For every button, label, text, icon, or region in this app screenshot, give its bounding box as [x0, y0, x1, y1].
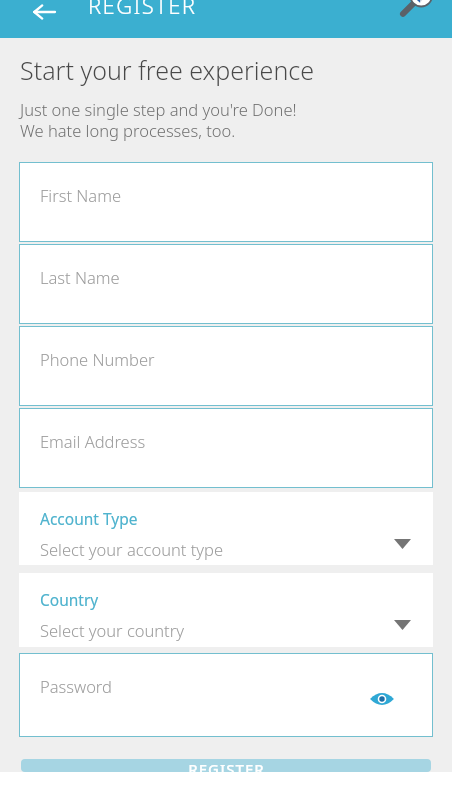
button[interactable]: Phone Number	[19, 326, 433, 406]
button[interactable]: REGISTER	[21, 759, 431, 772]
staticText: Phone Number	[40, 348, 155, 370]
staticText: REGISTER	[188, 759, 265, 772]
button[interactable]: Password	[19, 653, 433, 737]
staticText: Email Address	[40, 430, 146, 452]
button[interactable]: Search	[389, 0, 447, 16]
button[interactable]: Show password	[369, 686, 395, 712]
staticText: First Name	[40, 184, 121, 206]
staticText: Last Name	[40, 266, 120, 288]
staticText: Just one single step and you're Done! We…	[20, 98, 297, 142]
staticText: Select your account type	[40, 538, 224, 560]
staticText: Select your country	[40, 619, 184, 641]
staticText: Start your free experience	[20, 53, 314, 87]
button[interactable]: Country	[19, 573, 433, 647]
staticText: REGISTER	[88, 0, 197, 20]
button[interactable]: First Name	[19, 162, 433, 242]
button[interactable]: Back	[26, 0, 62, 30]
button[interactable]: Last Name	[19, 244, 433, 324]
staticText: Account Type	[40, 508, 138, 529]
button[interactable]: Email Address	[19, 408, 433, 488]
button[interactable]: Account Type	[19, 492, 433, 565]
staticText: Password	[40, 675, 112, 697]
staticText: Country	[40, 589, 99, 610]
